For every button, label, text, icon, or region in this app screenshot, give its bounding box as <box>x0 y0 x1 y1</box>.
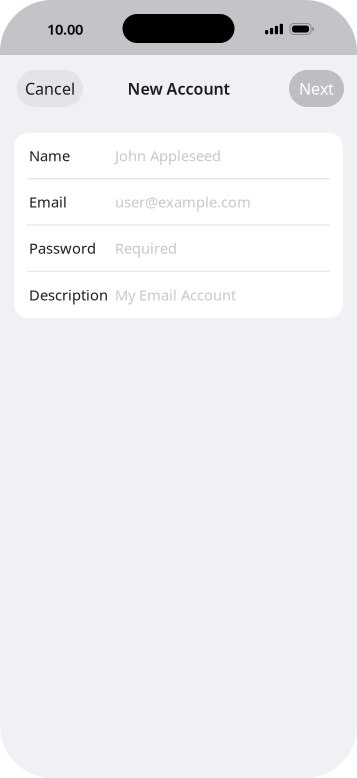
staticText: John Appleseed <box>115 146 221 165</box>
button[interactable]: Cancel <box>17 70 83 107</box>
staticText: Name <box>29 146 70 165</box>
staticText: Password <box>29 238 96 258</box>
staticText: user@example.com <box>115 192 251 212</box>
staticText: My Email Account <box>115 285 236 305</box>
staticText: Cancel <box>25 78 75 99</box>
staticText: Description <box>29 285 108 305</box>
staticText: Required <box>115 238 177 258</box>
staticText: Next <box>299 78 334 99</box>
staticText: 10.00 <box>47 19 83 39</box>
button[interactable]: Next <box>289 70 344 107</box>
staticText: New Account <box>127 78 229 99</box>
staticText: Email <box>29 192 67 212</box>
